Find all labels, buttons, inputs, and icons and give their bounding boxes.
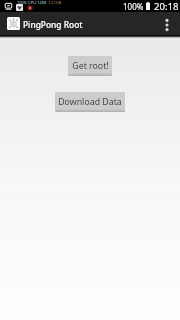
button[interactable]: More options (155, 12, 178, 35)
staticText: 20:18 (154, 0, 179, 12)
staticText: 1.21GB (48, 0, 62, 5)
staticText: 100% CPU 1268 (17, 0, 47, 5)
staticText: Get root! (72, 60, 109, 72)
staticText: 100% (123, 1, 144, 12)
button[interactable]: Get root! (68, 56, 112, 76)
button[interactable]: Download Data (55, 92, 125, 112)
staticText: PingPong Root (23, 19, 83, 30)
staticText: Download Data (58, 96, 122, 108)
